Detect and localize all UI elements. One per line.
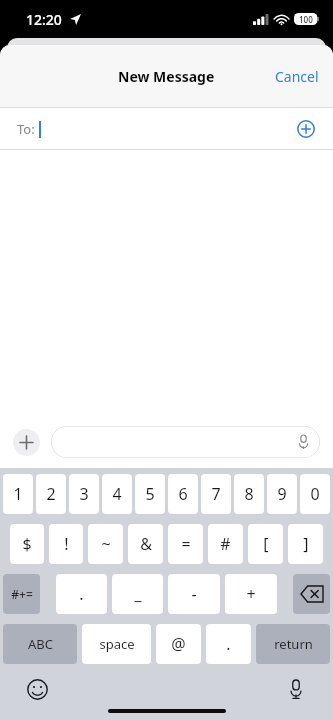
button[interactable]: Add attachment (13, 429, 40, 456)
button[interactable]: ! (49, 524, 83, 564)
button[interactable]: = (168, 524, 203, 564)
staticText: # (220, 533, 231, 555)
staticText: ABC (28, 635, 53, 653)
staticText: 4 (112, 483, 122, 505)
staticText: 2 (46, 483, 56, 505)
button[interactable]: & (128, 524, 163, 564)
button[interactable]: 3 (69, 474, 99, 514)
button[interactable]: space (82, 624, 151, 664)
staticText: Cancel (275, 67, 319, 86)
button[interactable]: Backspace (293, 574, 330, 614)
staticText: 3 (79, 483, 89, 505)
button[interactable]: Add contact (293, 116, 319, 142)
button[interactable]: return (256, 624, 330, 664)
staticText: #+= (11, 586, 33, 602)
button[interactable]: #+= (3, 574, 40, 614)
button[interactable]: 9 (267, 474, 297, 514)
staticText: $ (22, 533, 32, 555)
button[interactable]: ] (288, 524, 323, 564)
button[interactable]: 5 (135, 474, 165, 514)
staticText: To: (17, 120, 35, 138)
staticText: @ (171, 633, 186, 655)
staticText: 0 (310, 483, 320, 505)
staticText: _ (134, 583, 142, 605)
button[interactable]: 2 (36, 474, 66, 514)
staticText: + (246, 583, 256, 605)
button[interactable]: 6 (168, 474, 198, 514)
staticText: 7 (211, 483, 221, 505)
staticText: . (79, 583, 84, 605)
button[interactable]: Emoji (24, 676, 50, 702)
button[interactable]: @ (156, 624, 201, 664)
staticText: - (191, 583, 197, 605)
staticText: [ (263, 533, 269, 555)
button[interactable]: 8 (234, 474, 264, 514)
staticText: ~ (101, 533, 111, 555)
staticText: return (274, 635, 313, 653)
button[interactable]: ABC (3, 624, 77, 664)
staticText: 1 (13, 483, 23, 505)
button[interactable]: $ (10, 524, 44, 564)
button[interactable]: Cancel (261, 59, 333, 94)
other: Dictate (295, 434, 311, 450)
button[interactable]: 1 (3, 474, 33, 514)
staticText: ] (303, 533, 309, 555)
button[interactable]: + (225, 574, 277, 614)
button[interactable]: 7 (201, 474, 231, 514)
staticText: 9 (277, 483, 287, 505)
button[interactable]: Dictate (51, 426, 320, 458)
staticText: & (140, 533, 152, 555)
staticText: 5 (145, 483, 155, 505)
button[interactable]: - (168, 574, 220, 614)
button[interactable]: . (206, 624, 251, 664)
button[interactable]: . (56, 574, 107, 614)
button[interactable]: 4 (102, 474, 132, 514)
staticText: 100 (299, 14, 313, 25)
button[interactable]: _ (112, 574, 163, 614)
button[interactable]: # (208, 524, 243, 564)
staticText: 8 (244, 483, 254, 505)
staticText: . (226, 633, 231, 655)
staticText: = (181, 533, 191, 555)
button[interactable]: Dictation (283, 676, 309, 702)
button[interactable]: ~ (88, 524, 123, 564)
staticText: ! (64, 533, 69, 555)
button[interactable]: 0 (300, 474, 330, 514)
staticText: space (99, 635, 135, 653)
staticText: New Message (118, 67, 215, 86)
button[interactable]: [ (248, 524, 283, 564)
staticText: 6 (178, 483, 188, 505)
staticText: 12:20 (26, 10, 62, 29)
